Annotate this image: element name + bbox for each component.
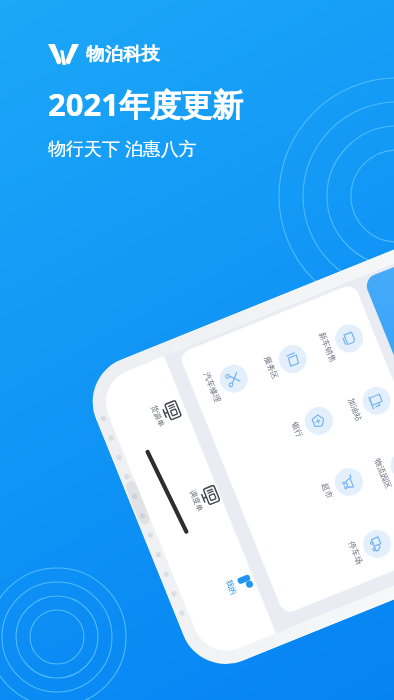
staticText: 加油站 [346,396,364,422]
button[interactable]: 调度单 [177,468,228,529]
staticText: 银行 [290,420,305,439]
staticText: 停车场 [347,540,365,566]
button[interactable]: 新车销售 [311,311,372,372]
staticText: 货源单 [149,404,166,429]
button[interactable]: 货源单 [138,383,189,444]
button[interactable]: 服务区 [255,331,316,393]
button[interactable]: 停车场 [339,516,394,578]
staticText: 调度单 [188,489,205,513]
staticText: 物泊科技 [86,43,161,66]
button[interactable]: 加油站 [339,373,394,435]
button[interactable]: 银行 [281,393,342,455]
button[interactable]: 汽车修理 [196,351,257,412]
staticText: 2021年度更新 [48,83,243,125]
staticText: 物行天下 泊惠八方 [48,136,197,161]
staticText: 服务区 [262,355,281,381]
button[interactable]: 我的 [212,554,263,615]
staticText: 我的 [224,579,238,596]
staticText: 物流园区 [373,457,394,490]
button[interactable]: 物流园区 [367,437,394,499]
staticText: 新车销售 [317,330,338,364]
staticText: 汽车修理 [202,370,223,404]
button[interactable]: 超市 [311,454,372,516]
staticText: 超市 [320,481,335,500]
